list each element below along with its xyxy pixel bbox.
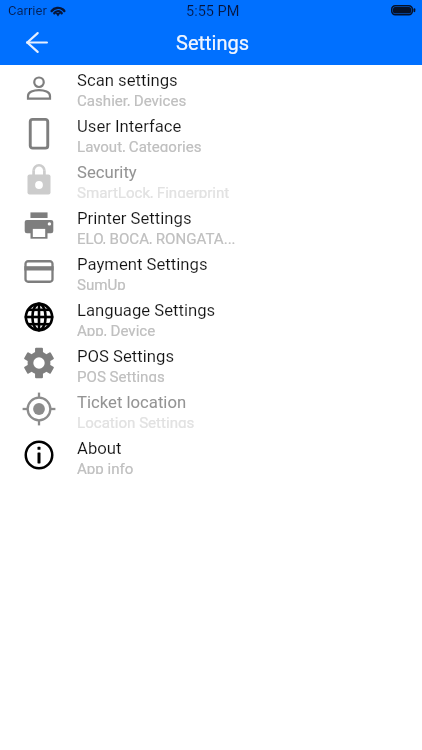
staticText: Layout, Categories	[77, 138, 202, 152]
staticText: Printer Settings	[77, 209, 192, 229]
staticText: Security	[77, 163, 137, 183]
staticText: Carrier	[8, 3, 47, 18]
button[interactable]: Language Settings	[0, 295, 422, 341]
staticText: Payment Settings	[77, 255, 208, 275]
staticText: Location Settings	[77, 414, 195, 428]
button[interactable]: Printer Settings	[0, 203, 422, 249]
staticText: Cashier, Devices	[77, 92, 187, 106]
staticText: App, Device	[77, 322, 156, 336]
staticText: 5:55 PM	[186, 3, 240, 20]
button[interactable]: Back	[18, 24, 56, 62]
staticText: Ticket location	[77, 393, 187, 413]
staticText: App info	[77, 460, 134, 474]
staticText: Scan settings	[77, 71, 178, 91]
staticText: SmartLock, Fingerprint	[77, 184, 230, 198]
button[interactable]: User Interface	[0, 111, 422, 157]
staticText: POS Settings	[77, 368, 165, 382]
button[interactable]: Scan settings	[0, 65, 422, 111]
button[interactable]: Payment Settings	[0, 249, 422, 295]
button[interactable]: Security	[0, 157, 422, 203]
staticText: POS Settings	[77, 347, 174, 367]
staticText: User Interface	[77, 117, 182, 137]
staticText: About	[77, 439, 122, 459]
button[interactable]: Ticket location	[0, 387, 422, 433]
staticText: Settings	[176, 31, 250, 54]
button[interactable]: About	[0, 433, 422, 479]
staticText: SumUp	[77, 276, 126, 290]
staticText: ELO, BOCA, RONGATA...	[77, 230, 236, 244]
staticText: Language Settings	[77, 301, 216, 321]
button[interactable]: POS Settings	[0, 341, 422, 387]
